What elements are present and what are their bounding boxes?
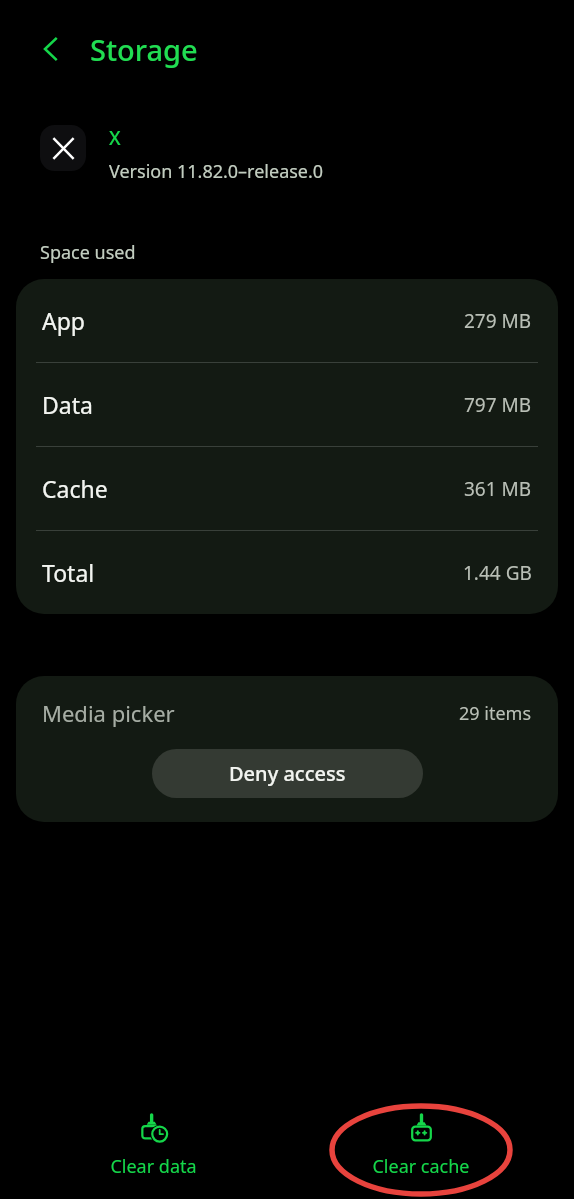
button[interactable]: Cache bbox=[16, 447, 558, 530]
staticText: 1.44 GB bbox=[463, 560, 532, 586]
staticText: Total bbox=[42, 557, 95, 588]
staticText: 29 items bbox=[459, 701, 532, 726]
button[interactable]: Data bbox=[16, 363, 558, 446]
button[interactable]: Deny access bbox=[152, 749, 423, 798]
staticText: Clear data bbox=[110, 1154, 197, 1179]
button[interactable]: Total bbox=[16, 531, 558, 614]
staticText: App bbox=[42, 305, 85, 336]
button[interactable]: App bbox=[16, 279, 558, 362]
staticText: Clear cache bbox=[372, 1154, 470, 1179]
staticText: X bbox=[109, 125, 121, 151]
button[interactable]: Clear cache bbox=[306, 1093, 536, 1199]
button[interactable]: Back bbox=[26, 24, 76, 74]
staticText: Version 11.82.0–release.0 bbox=[109, 159, 324, 184]
staticText: 279 MB bbox=[464, 308, 532, 334]
staticText: Space used bbox=[40, 240, 136, 265]
staticText: Deny access bbox=[229, 760, 346, 787]
staticText: Media picker bbox=[42, 698, 175, 728]
staticText: 361 MB bbox=[464, 476, 532, 502]
staticText: Data bbox=[42, 389, 93, 420]
staticText: 797 MB bbox=[464, 392, 532, 418]
button[interactable]: Clear data bbox=[38, 1093, 268, 1199]
staticText: Storage bbox=[90, 30, 198, 69]
staticText: Cache bbox=[42, 473, 108, 504]
